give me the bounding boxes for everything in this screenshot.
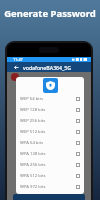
staticText: WPA 128 bits (20, 151, 46, 157)
staticText: WEP 256 bits (20, 118, 46, 124)
button[interactable]: WEP 64 bits (16, 93, 84, 104)
button[interactable]: WPA 512 bits (16, 170, 84, 181)
button[interactable]: WEP 512 bits (16, 126, 84, 137)
staticText: WEP 128 bits (20, 107, 46, 113)
staticText: WPA 64 bits (20, 140, 44, 146)
staticText: WEP 64 bits (20, 96, 43, 102)
button[interactable]: WPA 972 bits (16, 181, 84, 192)
button[interactable]: WPA 64 bits (16, 137, 84, 148)
button[interactable]: WPA 256 bits (16, 159, 84, 170)
button[interactable]: WEP 256 bits (16, 115, 84, 126)
staticText: Generate Password (0, 7, 100, 20)
button[interactable]: Password generator (43, 78, 58, 93)
staticText: WPA 256 bits (20, 162, 46, 168)
button[interactable]: WPA 128 bits (16, 148, 84, 159)
staticText: WPA 972 bits (20, 184, 46, 190)
staticText: WEP 512 bits (20, 129, 46, 135)
staticText: 11:47 (13, 57, 23, 62)
staticText: vodafoneBA364_5G (23, 64, 72, 71)
button[interactable]: Back (7, 62, 91, 72)
button[interactable]: WEP 128 bits (16, 104, 84, 115)
other: Back (14, 65, 19, 70)
staticText: WPA 512 bits (20, 173, 46, 179)
